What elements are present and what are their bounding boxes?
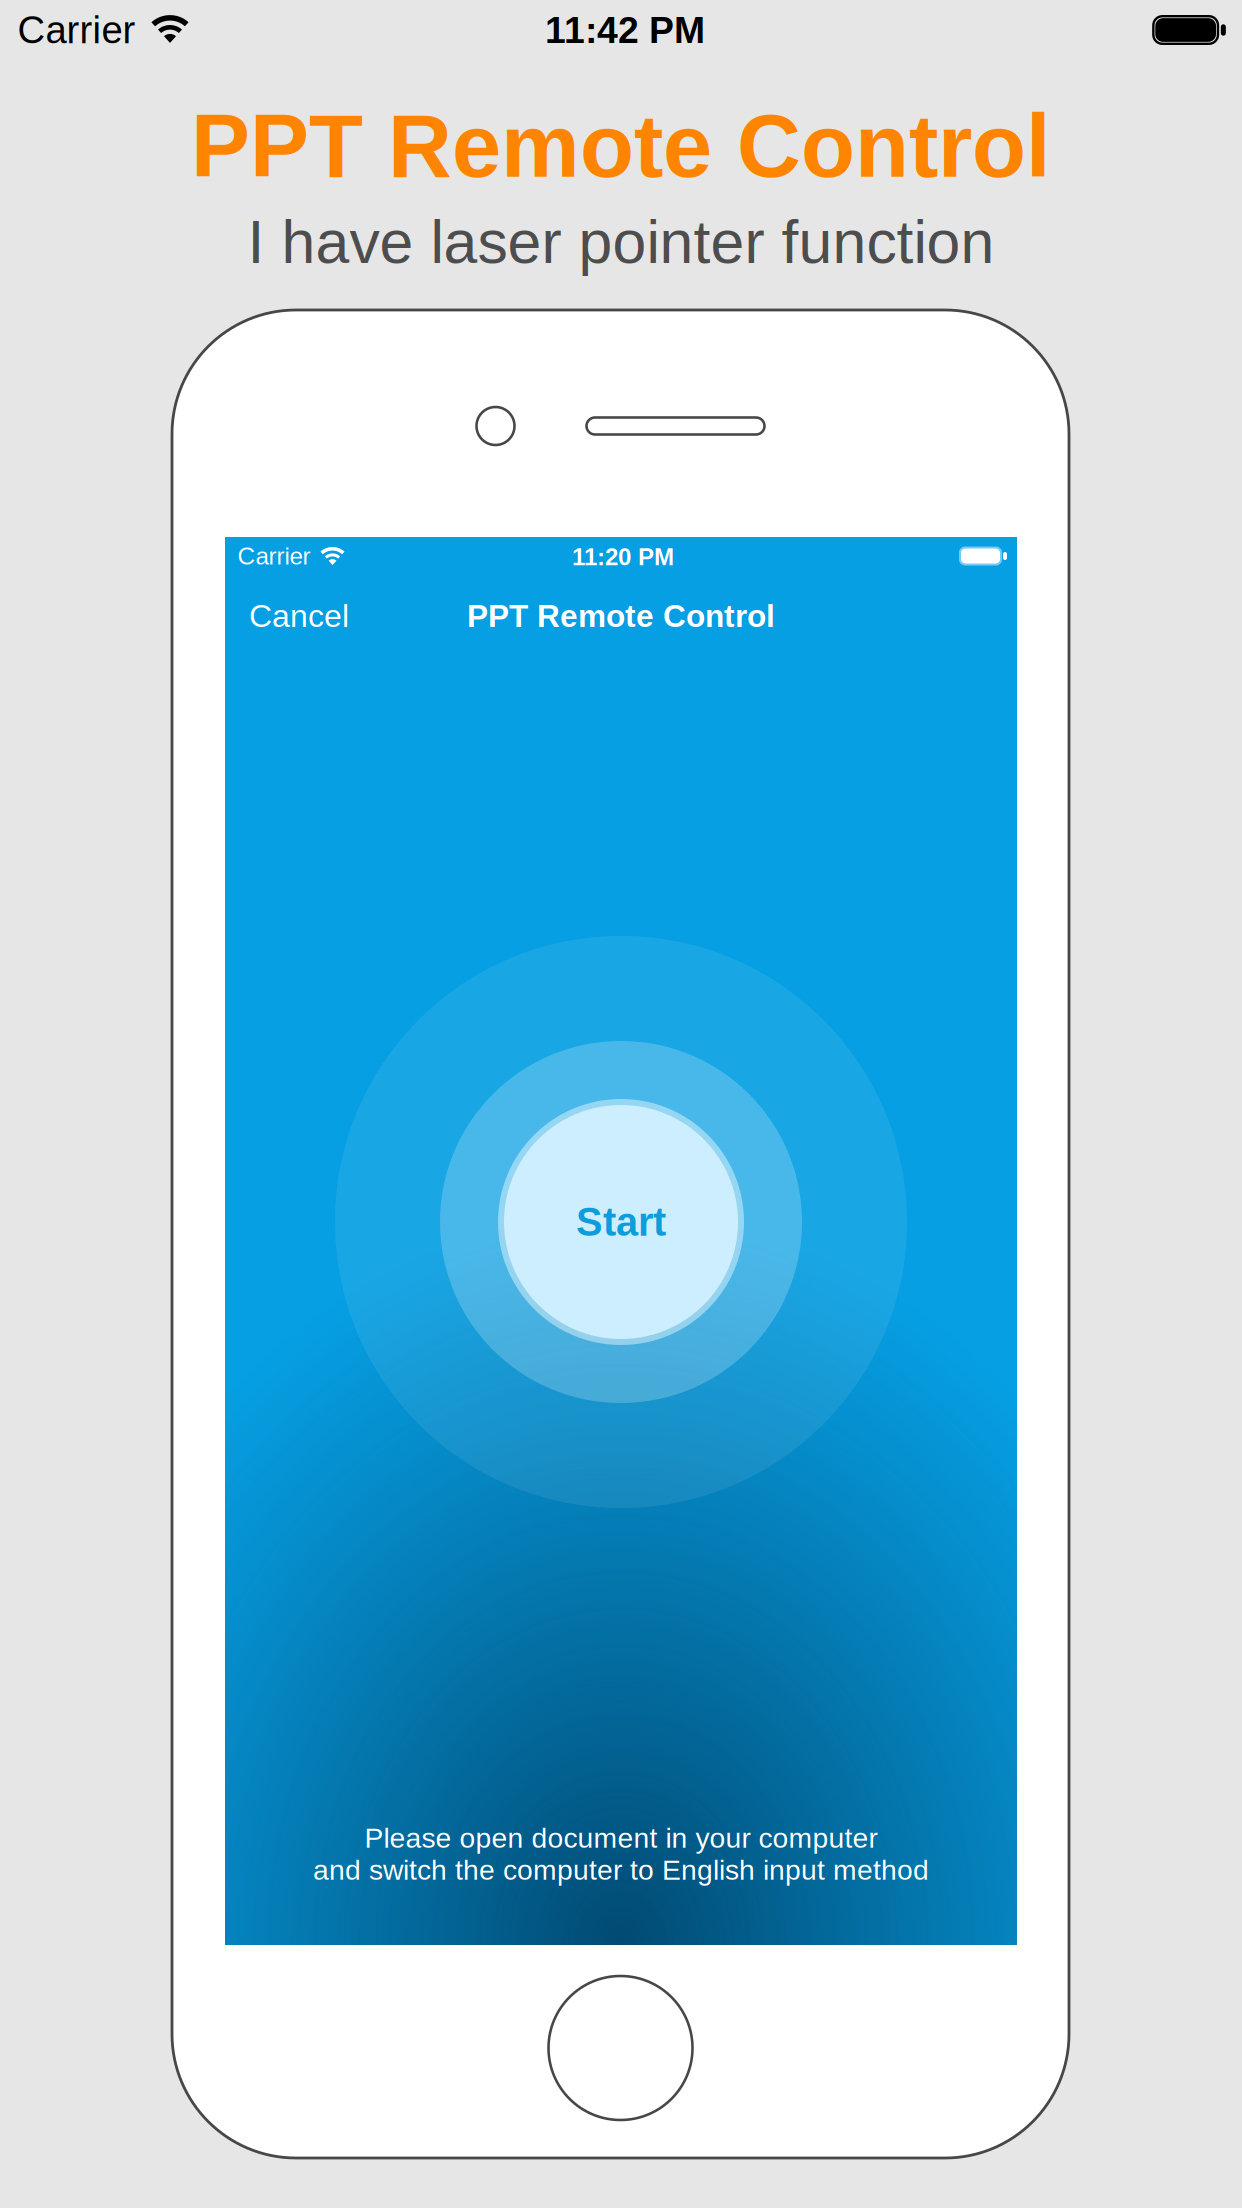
staticText: Please open document in your computer [364,1822,877,1854]
staticText: and switch the computer to English input… [313,1854,929,1886]
staticText: Start [576,1200,666,1244]
staticText: Carrier [17,9,135,51]
staticText: PPT Remote Control [191,96,1051,195]
staticText: I have laser pointer function [247,208,994,276]
staticText: Carrier [237,542,310,569]
staticText: PPT Remote Control [467,598,775,634]
button[interactable]: Start [498,1099,744,1345]
button[interactable]: Cancel [233,586,365,646]
staticText: 11:42 PM [545,9,705,51]
staticText: Cancel [249,598,349,634]
staticText: 11:20 PM [572,543,674,570]
